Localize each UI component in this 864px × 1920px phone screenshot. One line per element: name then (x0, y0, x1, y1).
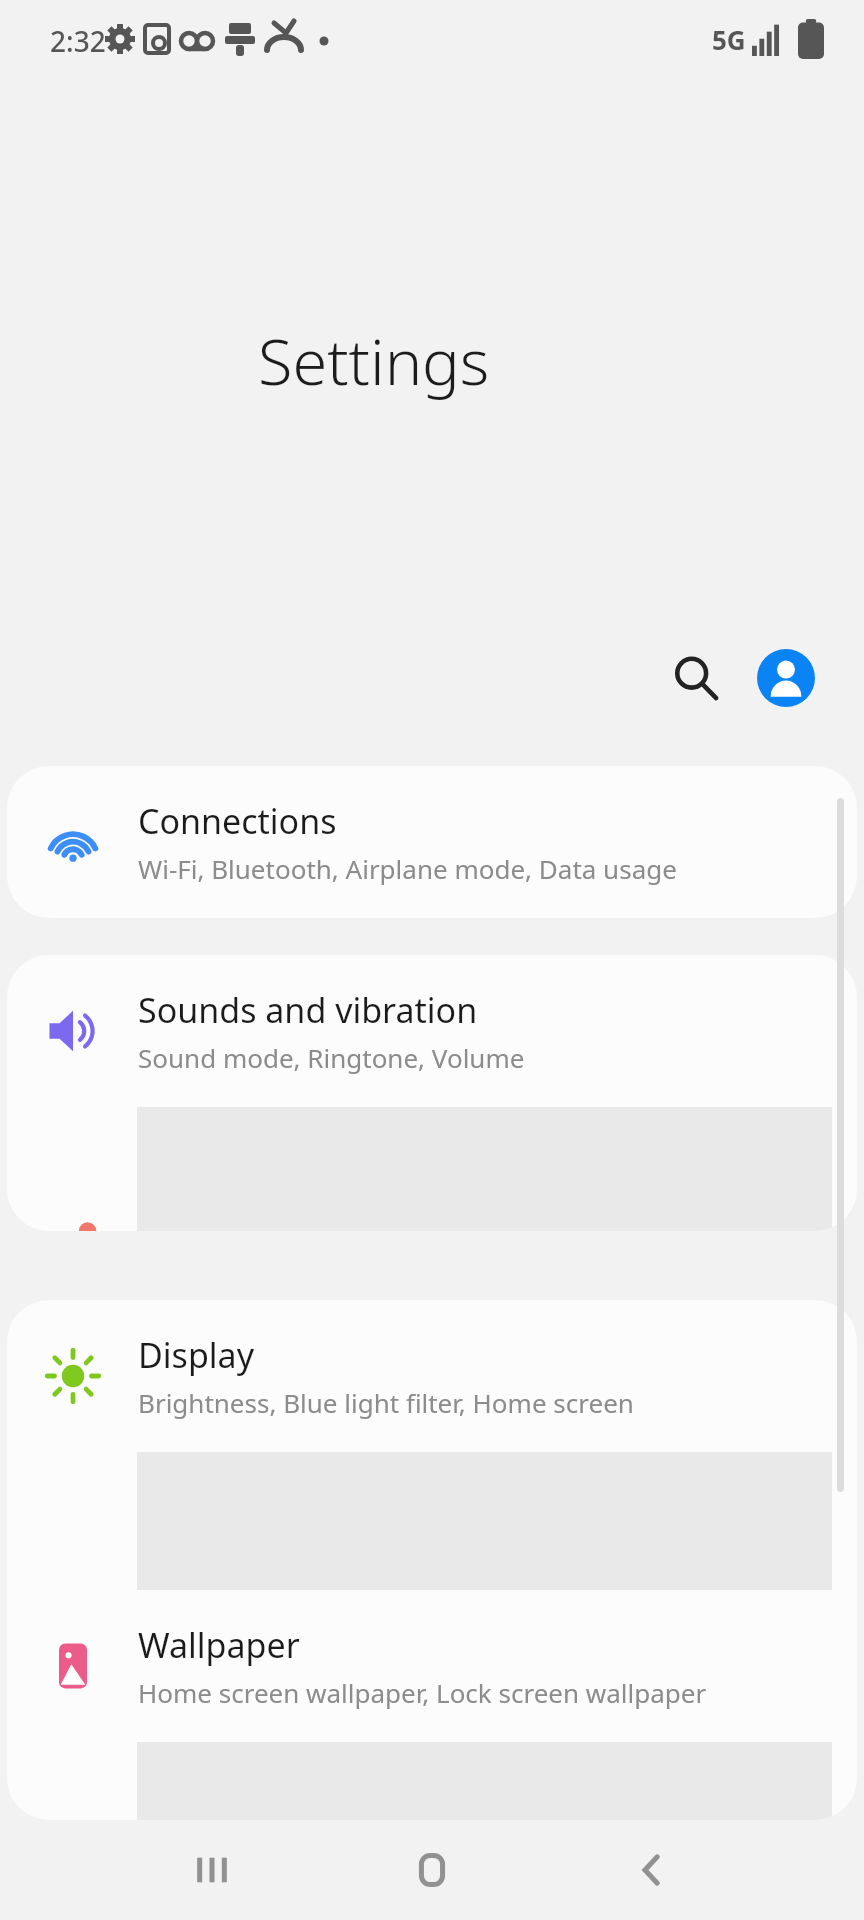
staticText: Wallpaper (138, 1622, 300, 1668)
button[interactable]: Sounds and vibration (7, 955, 857, 1107)
staticText: Settings (258, 318, 490, 404)
staticText: Connections (138, 798, 337, 844)
button[interactable]: Home (360, 1820, 504, 1920)
button[interactable]: Back (580, 1820, 724, 1920)
button[interactable]: Display (7, 1300, 857, 1452)
staticText: Wi-Fi, Bluetooth, Airplane mode, Data us… (138, 851, 677, 886)
staticText: Sound mode, Ringtone, Volume (138, 1040, 525, 1075)
staticText: Home screen wallpaper, Lock screen wallp… (138, 1675, 707, 1710)
staticText: Brightness, Blue light filter, Home scre… (138, 1385, 634, 1420)
staticText: 5G (712, 22, 746, 57)
button[interactable]: Account (746, 638, 826, 718)
staticText: 2:32 (50, 22, 106, 60)
button[interactable]: Search (656, 638, 736, 718)
button[interactable]: Wallpaper (7, 1590, 857, 1742)
staticText: Display (138, 1332, 254, 1378)
button[interactable]: Recents (140, 1820, 284, 1920)
staticText: Sounds and vibration (138, 987, 478, 1033)
button[interactable]: Connections (7, 766, 857, 918)
